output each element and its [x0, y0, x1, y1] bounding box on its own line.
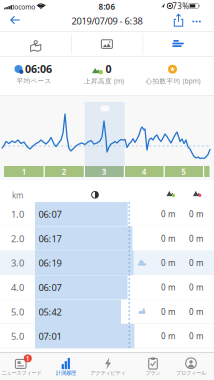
staticText: 3 [102, 166, 107, 177]
staticText: 0 m [189, 233, 203, 244]
staticText: 1 [26, 354, 30, 363]
staticText: 5 [181, 166, 186, 177]
staticText: 2 [62, 166, 67, 177]
button[interactable]: 1.0 [0, 202, 214, 226]
staticText: 5.0 [11, 306, 24, 318]
staticText: 0 m [161, 331, 175, 341]
button[interactable]: 戻る [6, 13, 24, 29]
staticText: 0 m [189, 306, 203, 317]
staticText: 3.0 [11, 257, 24, 269]
staticText: 上昇高度 (m) [84, 77, 124, 85]
staticText: 4.0 [11, 281, 24, 294]
button[interactable]: 計測履歴 [44, 353, 87, 379]
button[interactable]: 5.0 [0, 324, 214, 348]
button[interactable]: その他 [191, 16, 203, 26]
staticText: アクティビティ [90, 370, 125, 376]
staticText: 05:42 [38, 306, 61, 318]
staticText: 0 m [189, 331, 203, 341]
staticText: 0 m [161, 306, 175, 317]
button[interactable]: プロフィール [169, 353, 212, 379]
staticText: 07:01 [38, 330, 61, 342]
button[interactable]: 2.0 [0, 226, 214, 251]
staticText: 1.0 [11, 208, 24, 220]
staticText: km [12, 190, 23, 201]
staticText: ニュースフィード [1, 370, 41, 376]
staticText: 06:17 [38, 232, 61, 245]
button[interactable]: ニュースフィード [0, 353, 43, 379]
staticText: 0 m [161, 282, 175, 293]
staticText: プラン [145, 370, 160, 376]
staticText: 4 [142, 166, 147, 177]
staticText: 計測履歴 [56, 370, 76, 376]
staticText: 0 [105, 62, 111, 76]
staticText: 8:06 [98, 1, 115, 12]
button[interactable]: 3.0 [0, 251, 214, 275]
staticText: 2019/07/09 - 6:38 [71, 15, 142, 27]
staticText: 0 m [161, 209, 175, 219]
button[interactable]: スプリット [143, 32, 214, 56]
staticText: 06:07 [38, 281, 61, 294]
staticText: 06:06 [25, 62, 52, 76]
staticText: 0 m [189, 209, 203, 219]
staticText: 心拍数平均 (bpm) [145, 77, 200, 85]
button[interactable]: アクティビティ [86, 353, 129, 379]
staticText: 0 m [161, 233, 175, 244]
staticText: プロフィール [176, 370, 206, 376]
staticText: 06:19 [38, 257, 61, 269]
button[interactable]: 4.0 [0, 275, 214, 300]
staticText: 平均ペース [16, 77, 51, 85]
staticText: 0 m [161, 258, 175, 268]
button[interactable]: マップ [0, 32, 71, 56]
staticText: 0 m [189, 258, 203, 268]
staticText: 2.0 [11, 232, 24, 245]
staticText: 5.0 [11, 330, 24, 342]
staticText: 1 [22, 166, 27, 177]
button[interactable]: プラン [131, 353, 174, 379]
staticText: 0 m [189, 282, 203, 293]
button[interactable]: 写真 [71, 32, 142, 56]
staticText: 73% [172, 1, 189, 11]
button[interactable]: 共有 [171, 13, 185, 29]
staticText: docomo [10, 3, 35, 11]
button[interactable]: 5.0 [0, 300, 214, 324]
staticText: 06:07 [38, 208, 61, 220]
